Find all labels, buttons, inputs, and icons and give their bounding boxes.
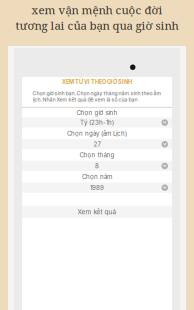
staticText: XEM TỬ VI THEO GIỜ SINH	[62, 78, 132, 85]
staticText: Chọn giờ sinh bạn. Chọn ngày tháng năm s…	[32, 90, 161, 103]
button[interactable]: Tý (23h-1h)	[22, 117, 172, 128]
staticText: Chọn giờ sinh	[76, 109, 117, 116]
staticText: 27	[93, 140, 100, 148]
button[interactable]: Xem kết quả	[22, 206, 172, 218]
staticText: Chọn ngày (âm Lịch)	[67, 130, 127, 137]
staticText: xem vận mệnh cuộc đời	[31, 2, 162, 18]
staticText: 1989	[90, 184, 104, 191]
button[interactable]: 8	[22, 161, 172, 171]
button[interactable]: 27	[22, 139, 172, 149]
button[interactable]: 1989	[22, 182, 172, 193]
staticText: Tý (23h-1h)	[80, 119, 114, 126]
staticText: Xem kết quả	[77, 208, 116, 216]
staticText: Chọn năm	[82, 173, 112, 180]
staticText: 8	[95, 162, 99, 170]
staticText: Chọn tháng	[79, 151, 114, 159]
staticText: tương lai của bạn qua giờ sinh	[15, 18, 178, 33]
